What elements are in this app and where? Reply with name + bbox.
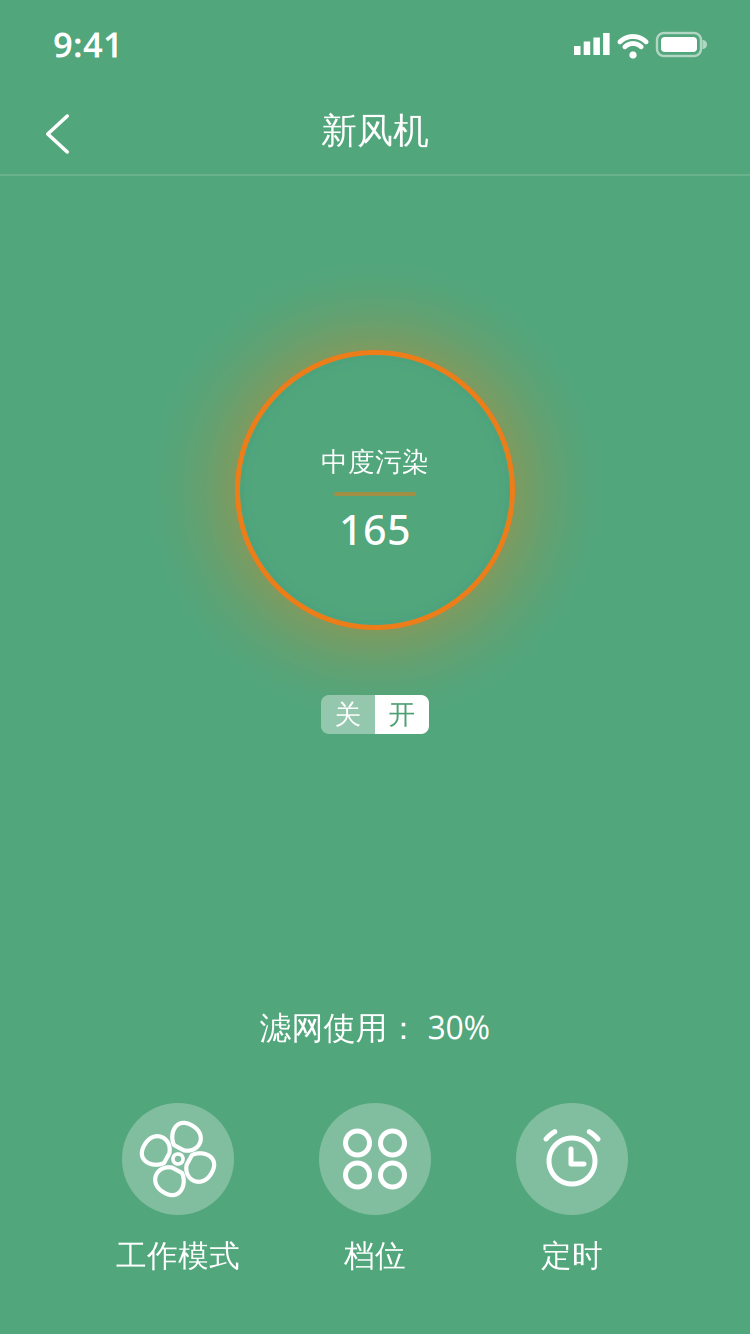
staticText: 165	[339, 502, 411, 556]
staticText: 档位	[344, 1237, 406, 1275]
staticText: 滤网使用： 30%	[259, 1006, 490, 1048]
button[interactable]: 关	[321, 695, 375, 734]
staticText: 定时	[541, 1237, 603, 1275]
staticText: 9:41	[53, 21, 123, 67]
staticText: 工作模式	[116, 1237, 240, 1275]
staticText: 开	[388, 698, 415, 731]
button[interactable]: 开	[375, 695, 429, 734]
staticText: 中度污染	[321, 446, 429, 478]
button[interactable]: 返回	[34, 102, 81, 166]
button[interactable]: 档位	[319, 1103, 431, 1215]
staticText: 关	[334, 698, 361, 731]
staticText: 新风机	[321, 109, 429, 153]
button[interactable]: 工作模式	[122, 1103, 234, 1215]
button[interactable]: 定时	[516, 1103, 628, 1215]
